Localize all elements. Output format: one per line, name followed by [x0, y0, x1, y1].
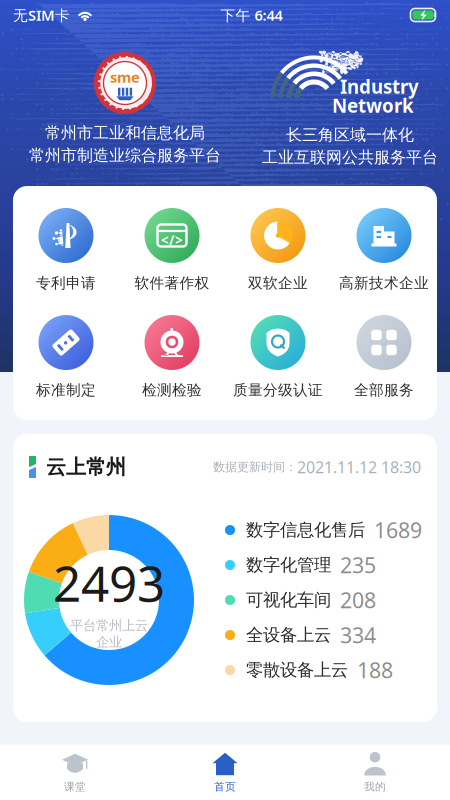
staticText: 质量分级认证 — [233, 381, 323, 399]
staticText: 下午 6:44 — [220, 5, 282, 25]
staticText: 企业 — [96, 634, 122, 650]
staticText: 检测检验 — [142, 381, 202, 399]
button[interactable]: 专利申请 — [13, 208, 119, 292]
staticText: 235 — [340, 551, 376, 579]
staticText: 全设备上云 — [246, 624, 331, 646]
button[interactable]: 全部服务 — [331, 315, 437, 399]
staticText: 长三角区域一体化 — [286, 125, 414, 145]
button[interactable]: 质量分级认证 — [225, 315, 331, 399]
staticText: 标准制定 — [36, 381, 96, 399]
staticText: 208 — [340, 586, 376, 614]
staticText: 数据更新时间： — [213, 460, 297, 474]
staticText: 全部服务 — [354, 381, 414, 399]
staticText: </> — [161, 231, 183, 249]
button[interactable]: 标准制定 — [13, 315, 119, 399]
staticText: 课堂 — [64, 780, 86, 793]
staticText: 334 — [340, 621, 376, 649]
staticText: 数字信息化售后 — [246, 519, 365, 541]
staticText: 专利申请 — [36, 274, 96, 292]
button[interactable]: 高新技术企业 — [331, 208, 437, 292]
button[interactable]: 课堂 — [0, 744, 150, 800]
button[interactable]: 双软企业 — [225, 208, 331, 292]
button[interactable]: 我的 — [300, 744, 450, 800]
button[interactable]: </> — [119, 208, 225, 292]
staticText: 无SIM卡 — [13, 5, 70, 25]
staticText: 188 — [357, 656, 393, 684]
staticText: 2493 — [53, 550, 165, 615]
staticText: 常州市工业和信息化局 — [45, 123, 205, 143]
staticText: 2021.11.12 18:30 — [297, 456, 421, 478]
staticText: Industry — [340, 74, 419, 99]
staticText: sme — [110, 67, 140, 87]
staticText: 零散设备上云 — [246, 659, 348, 681]
staticText: Network — [332, 93, 414, 118]
staticText: 常州市制造业综合服务平台 — [29, 146, 221, 165]
button[interactable]: 检测检验 — [119, 315, 225, 399]
staticText: 工业互联网公共服务平台 — [262, 148, 438, 167]
staticText: 1689 — [374, 516, 422, 544]
staticText: 平台常州上云 — [70, 617, 148, 634]
staticText: 双软企业 — [248, 274, 308, 292]
staticText: 首页 — [214, 780, 236, 793]
staticText: 云上常州 — [46, 455, 126, 479]
staticText: 软件著作权 — [134, 274, 209, 292]
button[interactable]: 首页 — [150, 744, 300, 800]
staticText: 高新技术企业 — [339, 274, 429, 292]
staticText: 我的 — [364, 780, 386, 793]
staticText: 可视化车间 — [246, 589, 331, 611]
staticText: 数字化管理 — [246, 554, 331, 576]
